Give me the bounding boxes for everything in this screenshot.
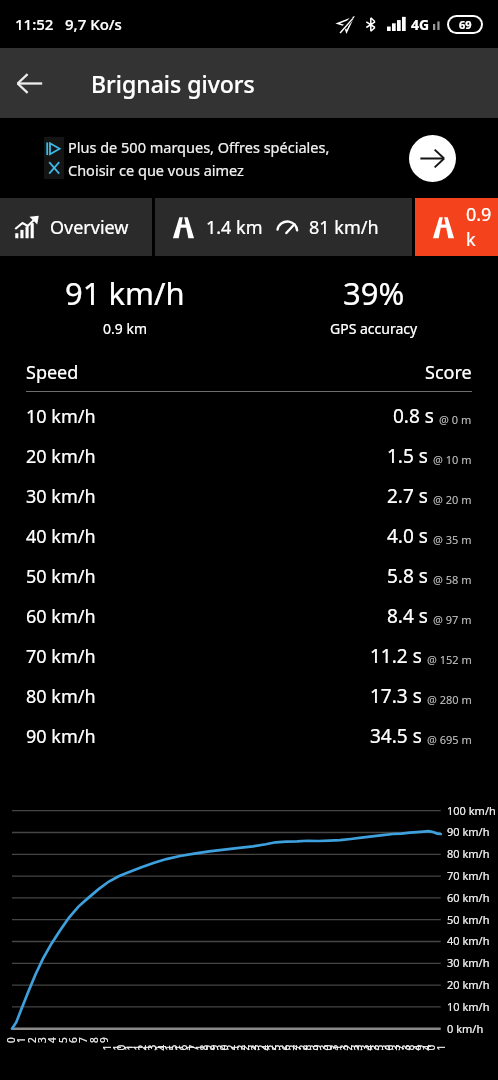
staticText: GPS accuracy — [330, 319, 418, 338]
staticText: @ 695 m — [427, 732, 472, 747]
staticText: Speed — [26, 360, 79, 385]
staticText: @ 58 m — [433, 572, 472, 587]
staticText: 8 — [87, 1037, 101, 1043]
staticText: 3 — [35, 1037, 49, 1043]
staticText: 34 — [347, 1043, 375, 1050]
button[interactable]: Overview — [0, 198, 152, 256]
staticText: 26 — [264, 1043, 292, 1050]
staticText: 80 km/h — [26, 684, 96, 709]
staticText: 24 — [244, 1043, 272, 1050]
staticText: Plus de 500 marques, Offres spéciales, — [68, 137, 330, 157]
staticText: Score — [425, 360, 472, 385]
staticText: 28 — [285, 1043, 313, 1050]
staticText: 30 km/h — [26, 484, 96, 509]
staticText: 10 km/h — [447, 999, 490, 1014]
staticText: 1 — [14, 1037, 28, 1043]
staticText: 39% — [343, 272, 405, 314]
staticText: 23 — [233, 1043, 261, 1050]
staticText: 81 km/h — [309, 215, 379, 240]
staticText: 20 — [202, 1043, 230, 1050]
button[interactable]: 20 km/h — [0, 436, 498, 476]
staticText: 35 — [357, 1043, 385, 1050]
staticText: 20 km/h — [447, 977, 490, 992]
staticText: 80 km/h — [447, 846, 490, 861]
staticText: 31 — [316, 1043, 344, 1050]
staticText: 0 — [4, 1037, 18, 1043]
staticText: @ 35 m — [433, 532, 472, 547]
staticText: 40 km/h — [447, 933, 490, 948]
button[interactable]: 1.4 km — [155, 198, 412, 256]
staticText: 0.9 k — [466, 202, 498, 252]
staticText: 16 — [161, 1043, 189, 1050]
button[interactable]: 10 km/h — [0, 396, 498, 436]
staticText: 25 — [254, 1043, 282, 1050]
staticText: 17 — [171, 1043, 199, 1050]
staticText: 18 — [182, 1043, 210, 1050]
staticText: @ 20 m — [433, 492, 472, 507]
staticText: 5.8 s — [387, 563, 428, 589]
staticText: 11 — [109, 1043, 137, 1050]
staticText: 34.5 s — [370, 723, 422, 749]
staticText: 4 — [45, 1037, 59, 1043]
staticText: 5 — [56, 1037, 70, 1043]
staticText: 9,7 Ko/s — [65, 14, 122, 34]
staticText: 8.4 s — [387, 603, 428, 629]
staticText: @ 10 m — [433, 452, 472, 467]
staticText: 7 — [76, 1037, 90, 1043]
staticText: 1.4 km — [206, 215, 263, 240]
staticText: 10 km/h — [26, 404, 96, 429]
staticText: 12 — [120, 1043, 148, 1050]
staticText: 27 — [275, 1043, 303, 1050]
staticText: 69 — [459, 17, 472, 32]
staticText: 11.2 s — [370, 643, 422, 669]
staticText: @ 280 m — [427, 692, 472, 707]
staticText: 30 — [306, 1043, 334, 1050]
staticText: 20 km/h — [26, 444, 96, 469]
button[interactable]: Plus de 500 marques, Offres spéciales, — [0, 118, 498, 198]
staticText: 17.3 s — [370, 683, 422, 709]
button[interactable]: 40 km/h — [0, 516, 498, 556]
staticText: @ 97 m — [433, 612, 472, 627]
staticText: 32 — [326, 1043, 354, 1050]
staticText: 70 km/h — [447, 868, 490, 883]
staticText: Brignais givors — [91, 68, 255, 99]
staticText: 4G — [411, 15, 430, 34]
staticText: 9 — [97, 1037, 111, 1043]
staticText: 38 — [388, 1043, 416, 1050]
staticText: 6 — [66, 1037, 80, 1043]
button[interactable]: 90 km/h — [0, 716, 498, 756]
staticText: 22 — [223, 1043, 251, 1050]
button[interactable]: 80 km/h — [0, 676, 498, 716]
staticText: 14 — [140, 1043, 168, 1050]
staticText: 1.5 s — [387, 443, 428, 469]
staticText: 13 — [130, 1043, 158, 1050]
staticText: 29 — [295, 1043, 323, 1050]
staticText: 70 km/h — [26, 644, 96, 669]
button[interactable]: 30 km/h — [0, 476, 498, 516]
staticText: 37 — [378, 1043, 406, 1050]
staticText: 90 km/h — [447, 824, 490, 839]
button[interactable]: 0.9 k — [415, 198, 498, 256]
button[interactable]: 70 km/h — [0, 636, 498, 676]
staticText: 39 — [398, 1043, 426, 1050]
staticText: 10 — [99, 1043, 127, 1050]
staticText: 41 — [419, 1043, 447, 1050]
button[interactable]: Open advertisement — [409, 135, 456, 182]
staticText: 40 — [409, 1043, 437, 1050]
staticText: 33 — [336, 1043, 364, 1050]
staticText: 60 km/h — [447, 890, 490, 905]
button[interactable]: 50 km/h — [0, 556, 498, 596]
staticText: 15 — [151, 1043, 179, 1050]
button[interactable]: Back — [0, 54, 58, 112]
staticText: 40 km/h — [26, 524, 96, 549]
staticText: 2 — [25, 1037, 39, 1043]
staticText: 50 km/h — [26, 564, 96, 589]
staticText: 50 km/h — [447, 912, 490, 927]
button[interactable]: 60 km/h — [0, 596, 498, 636]
staticText: Choisir ce que vous aimez — [68, 160, 244, 180]
staticText: Overview — [50, 215, 129, 240]
staticText: 2.7 s — [387, 483, 428, 509]
staticText: 0.9 km — [103, 319, 147, 338]
staticText: 90 km/h — [26, 724, 96, 749]
staticText: 91 km/h — [65, 272, 185, 314]
